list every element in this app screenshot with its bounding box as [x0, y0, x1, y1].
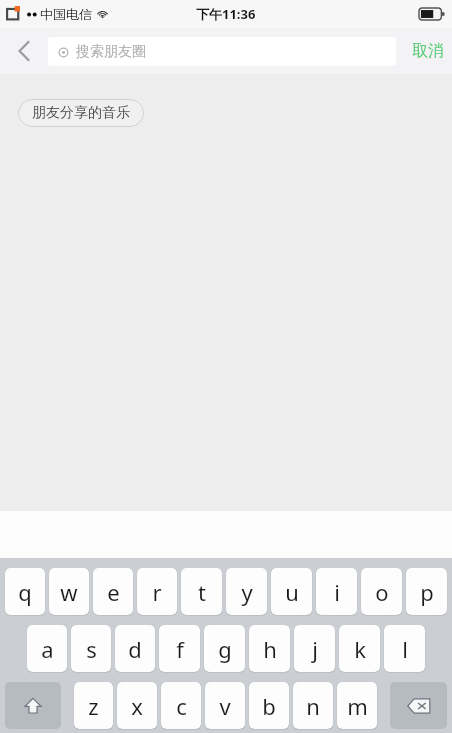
button[interactable]: j — [294, 625, 335, 672]
button[interactable]: 朋友分享的音乐 — [18, 99, 144, 127]
button[interactable]: x — [117, 682, 157, 729]
button[interactable]: h — [249, 625, 290, 672]
staticText: u — [285, 577, 299, 607]
button[interactable]: 搜索朋友圈 — [48, 37, 396, 66]
button[interactable]: c — [161, 682, 201, 729]
staticText: x — [131, 691, 143, 721]
button[interactable]: u — [271, 568, 312, 615]
staticText: l — [402, 634, 408, 664]
staticText: 搜索朋友圈 — [76, 43, 146, 61]
button[interactable]: k — [339, 625, 380, 672]
staticText: f — [176, 634, 184, 664]
button[interactable]: z — [74, 682, 113, 729]
button[interactable]: Back — [0, 28, 48, 74]
staticText: g — [218, 634, 232, 664]
staticText: s — [86, 634, 97, 664]
staticText: o — [375, 577, 389, 607]
button[interactable]: q — [5, 568, 45, 615]
staticText: 中国电信 — [40, 6, 92, 22]
button[interactable]: s — [71, 625, 111, 672]
button[interactable]: m — [337, 682, 377, 729]
staticText: b — [262, 691, 276, 721]
staticText: d — [128, 634, 142, 664]
button[interactable]: o — [361, 568, 402, 615]
staticText: i — [334, 577, 340, 607]
button[interactable]: d — [115, 625, 155, 672]
staticText: q — [18, 577, 32, 607]
staticText: t — [198, 577, 206, 607]
staticText: y — [241, 577, 253, 607]
staticText: 朋友分享的音乐 — [32, 104, 130, 122]
staticText: j — [312, 634, 318, 664]
button[interactable]: n — [293, 682, 333, 729]
staticText: r — [152, 577, 162, 607]
button[interactable]: v — [205, 682, 245, 729]
button[interactable]: w — [49, 568, 89, 615]
staticText: 下午11:36 — [196, 5, 256, 23]
button[interactable]: Backspace — [390, 682, 447, 729]
staticText: 取消 — [412, 41, 444, 61]
staticText: h — [263, 634, 277, 664]
staticText: k — [354, 634, 366, 664]
button[interactable]: r — [137, 568, 177, 615]
button[interactable]: p — [406, 568, 447, 615]
button[interactable]: e — [93, 568, 133, 615]
button[interactable]: b — [249, 682, 289, 729]
button[interactable]: t — [181, 568, 222, 615]
button[interactable]: i — [316, 568, 357, 615]
button[interactable]: f — [159, 625, 200, 672]
staticText: p — [420, 577, 434, 607]
staticText: a — [41, 634, 54, 664]
staticText: m — [347, 691, 368, 721]
staticText: n — [306, 691, 320, 721]
button[interactable]: l — [384, 625, 425, 672]
staticText: w — [60, 577, 78, 607]
staticText: c — [176, 691, 187, 721]
button[interactable]: g — [204, 625, 245, 672]
staticText: e — [107, 577, 120, 607]
button[interactable]: y — [226, 568, 267, 615]
button[interactable]: Shift — [5, 682, 61, 729]
staticText: z — [88, 691, 99, 721]
button[interactable]: a — [27, 625, 67, 672]
staticText: v — [219, 691, 231, 721]
button[interactable]: 取消 — [404, 28, 452, 74]
